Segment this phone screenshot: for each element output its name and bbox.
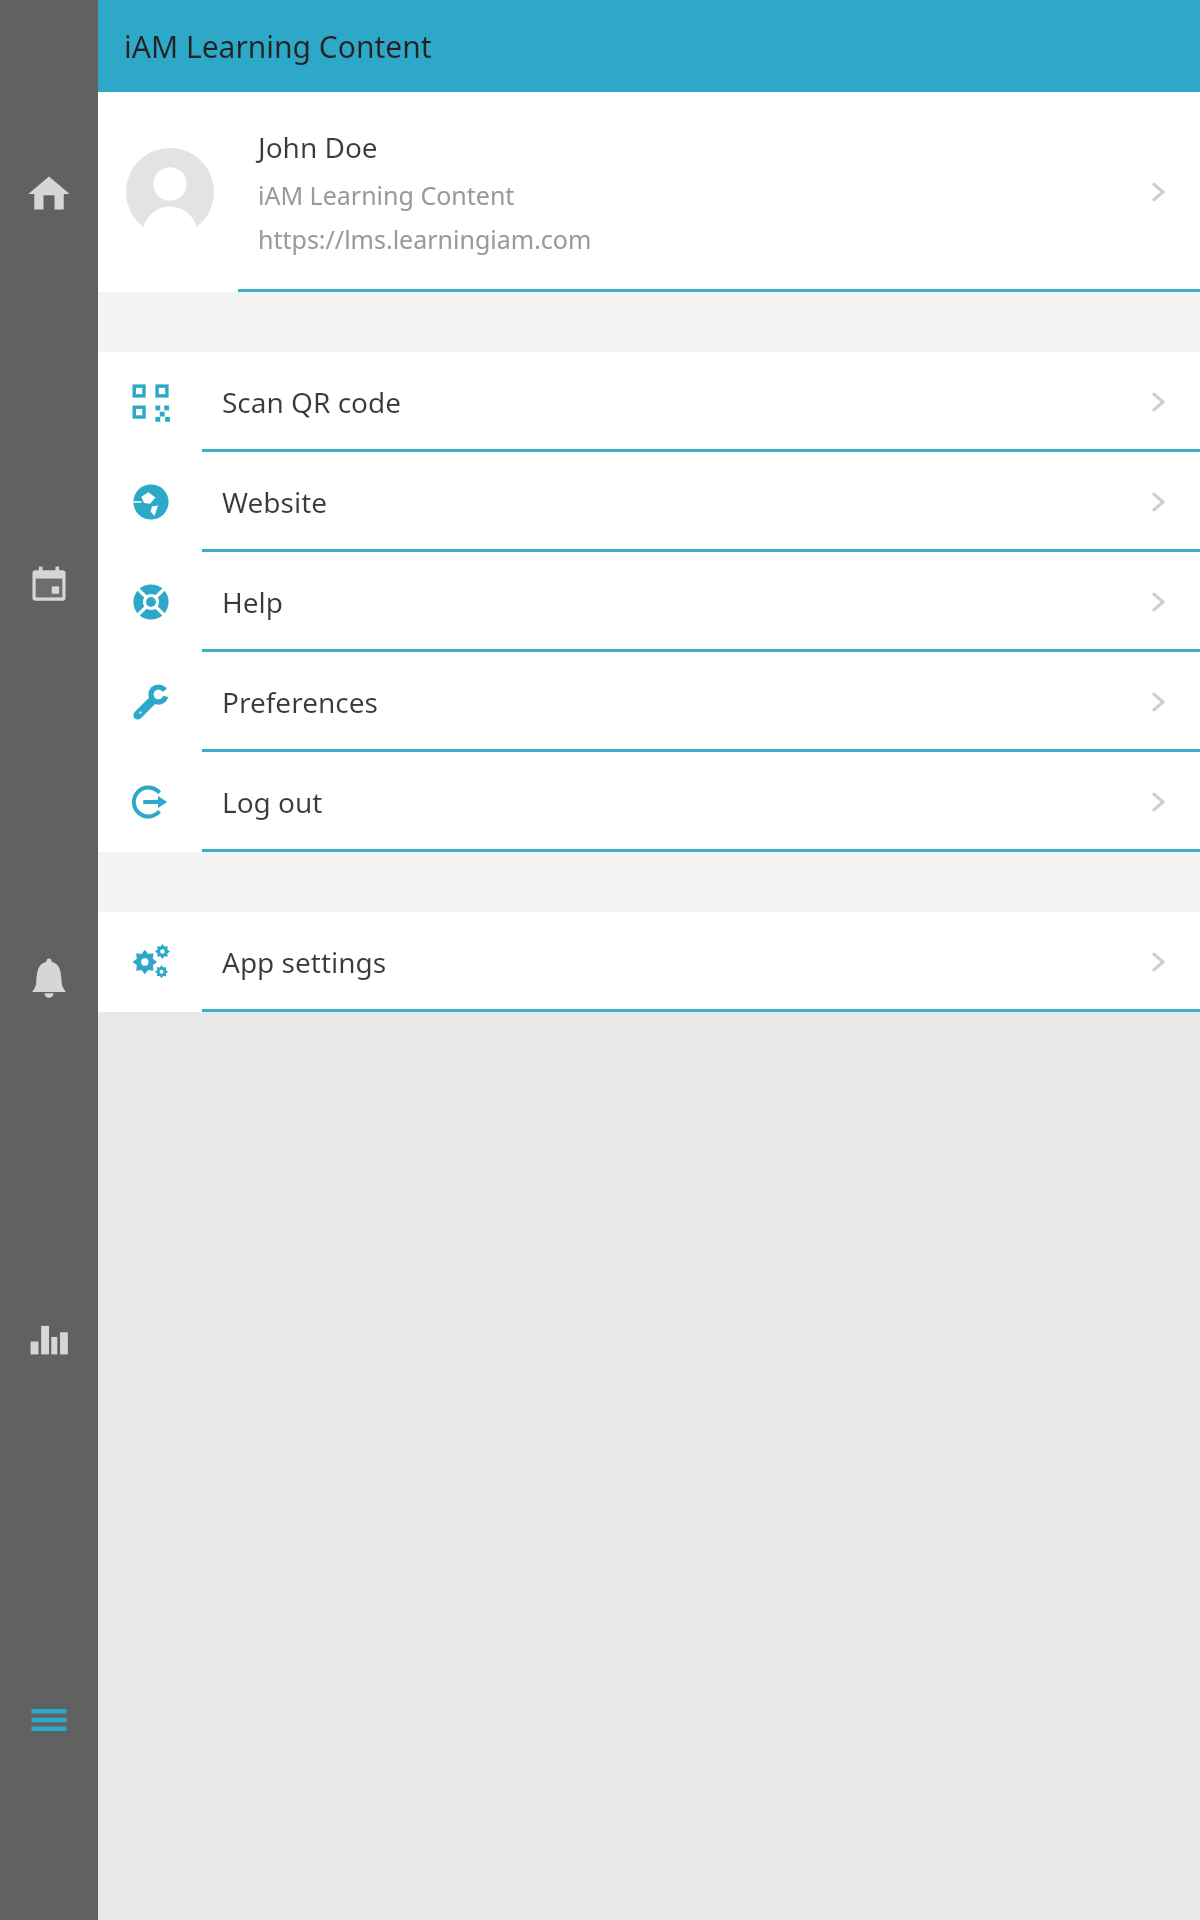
staticText: Scan QR code bbox=[222, 383, 1140, 421]
button[interactable]: Website bbox=[98, 452, 1200, 552]
staticText: John Doe bbox=[258, 128, 378, 166]
button[interactable]: Home bbox=[0, 160, 98, 226]
button[interactable]: Calendar bbox=[0, 552, 98, 618]
button[interactable]: Preferences bbox=[98, 652, 1200, 752]
button[interactable]: Menu bbox=[0, 1687, 98, 1753]
staticText: Website bbox=[222, 483, 1140, 521]
button[interactable]: John Doe bbox=[98, 92, 1200, 292]
staticText: iAM Learning Content bbox=[258, 178, 515, 212]
staticText: Preferences bbox=[222, 683, 1140, 721]
button[interactable]: App settings bbox=[98, 912, 1200, 1012]
button[interactable]: Help bbox=[98, 552, 1200, 652]
button[interactable]: Scan QR code bbox=[98, 352, 1200, 452]
staticText: App settings bbox=[222, 943, 1140, 981]
staticText: iAM Learning Content bbox=[124, 26, 432, 67]
staticText: https://lms.learningiam.com bbox=[258, 222, 592, 256]
button[interactable]: Log out bbox=[98, 752, 1200, 852]
staticText: Log out bbox=[222, 783, 1140, 821]
button[interactable]: Notifications bbox=[0, 947, 98, 1013]
staticText: Help bbox=[222, 583, 1140, 621]
button[interactable]: Reports bbox=[0, 1303, 98, 1369]
